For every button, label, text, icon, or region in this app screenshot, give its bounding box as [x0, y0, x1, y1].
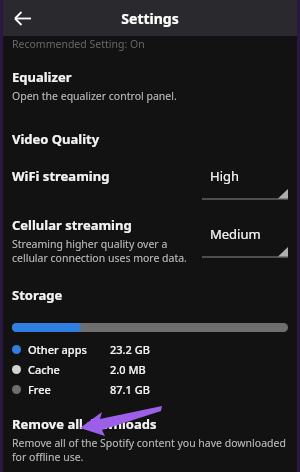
button[interactable]: WiFi streaming [12, 167, 288, 200]
staticText: Cellular streaming [12, 216, 132, 234]
staticText: Medium [210, 225, 261, 243]
staticText: Remove all of the Spotify content you ha… [12, 436, 288, 464]
staticText: WiFi streaming [12, 167, 110, 185]
staticText: Free [28, 382, 110, 397]
button[interactable]: Equalizer [12, 68, 288, 103]
staticText: Remove all downloads [12, 415, 157, 433]
staticText: Cache [28, 362, 110, 377]
button[interactable]: Cellular streaming [12, 216, 288, 265]
staticText: 2.0 MB [110, 362, 146, 377]
staticText: Settings [121, 9, 179, 28]
button[interactable]: High [202, 167, 288, 200]
staticText: Streaming higher quality over a cellular… [12, 237, 196, 265]
staticText: Video Quality [12, 130, 100, 148]
staticText: Storage [12, 286, 63, 304]
button[interactable]: Remove all downloads [12, 415, 288, 464]
staticText: 87.1 GB [110, 382, 150, 397]
button[interactable]: Back [7, 3, 37, 33]
staticText: Equalizer [12, 68, 72, 86]
staticText: Recommended Setting: On [12, 37, 145, 51]
staticText: 23.2 GB [110, 342, 150, 357]
staticText: Other apps [28, 342, 110, 357]
staticText: Open the equalizer control panel. [12, 89, 177, 103]
staticText: High [210, 167, 240, 185]
button[interactable]: Medium [202, 225, 288, 258]
